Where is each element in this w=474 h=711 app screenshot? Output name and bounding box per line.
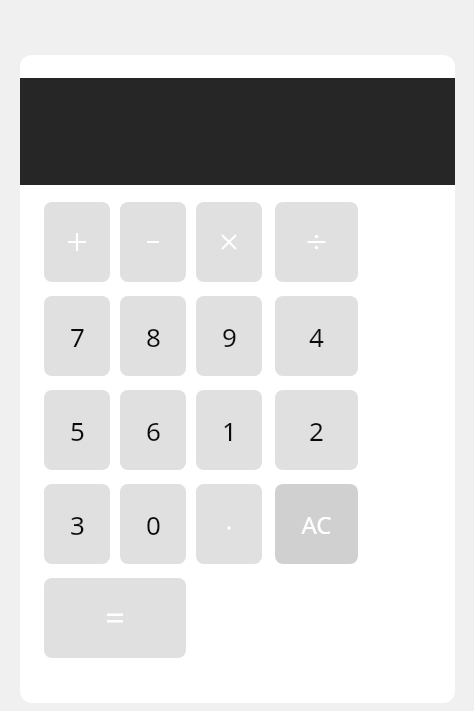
staticText: 6: [146, 413, 161, 448]
button[interactable]: Decimal point: [196, 484, 262, 564]
staticText: 5: [70, 413, 85, 448]
button[interactable]: Multiply: [196, 202, 262, 282]
button[interactable]: 4: [275, 296, 358, 376]
staticText: 4: [309, 319, 324, 354]
staticText: 7: [70, 319, 85, 354]
button[interactable]: 1: [196, 390, 262, 470]
staticText: 3: [70, 507, 85, 542]
button[interactable]: Minus: [120, 202, 186, 282]
staticText: 2: [309, 413, 324, 448]
button[interactable]: 9: [196, 296, 262, 376]
staticText: AC: [301, 508, 332, 541]
button[interactable]: 8: [120, 296, 186, 376]
button[interactable]: 5: [44, 390, 110, 470]
staticText: 8: [146, 319, 161, 354]
button[interactable]: 2: [275, 390, 358, 470]
button[interactable]: 3: [44, 484, 110, 564]
button[interactable]: AC: [275, 484, 358, 564]
staticText: 0: [146, 507, 161, 542]
button[interactable]: Plus: [44, 202, 110, 282]
button[interactable]: 6: [120, 390, 186, 470]
button[interactable]: Equals: [44, 578, 186, 658]
staticText: 9: [222, 319, 237, 354]
button[interactable]: 0: [120, 484, 186, 564]
staticText: 1: [222, 413, 237, 448]
button[interactable]: Divide: [275, 202, 358, 282]
button[interactable]: 7: [44, 296, 110, 376]
